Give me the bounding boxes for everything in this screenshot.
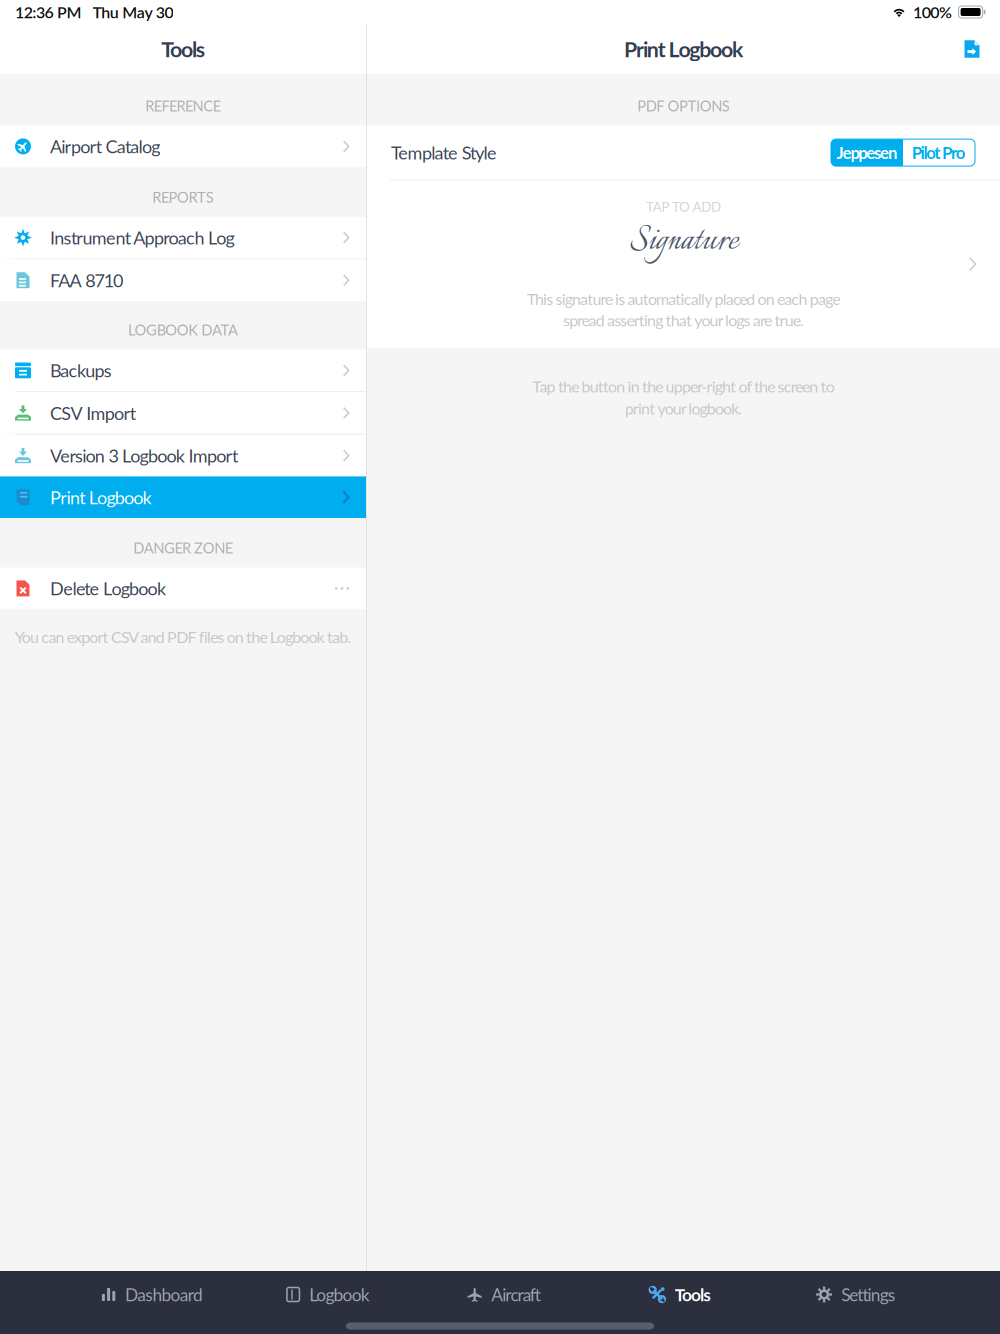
button[interactable]: CSV Import (0, 392, 366, 434)
staticText: Version 3 Logbook Import (50, 445, 238, 466)
button[interactable]: Print Logbook (0, 476, 366, 518)
button[interactable]: Template Style (367, 126, 1000, 180)
staticText: FAA 8710 (50, 269, 123, 291)
staticText: This signature is automatically placed o… (527, 289, 840, 308)
button[interactable]: Instrument Approach Log (0, 217, 366, 258)
button[interactable]: FAA 8710 (0, 259, 366, 301)
staticText: DANGER ZONE (133, 539, 233, 557)
staticText: Settings (841, 1284, 896, 1305)
staticText: print your logbook. (625, 399, 742, 418)
staticText: PDF OPTIONS (637, 97, 730, 115)
staticText: Template Style (391, 142, 497, 163)
staticText: Pilot Pro (912, 143, 966, 163)
staticText: REPORTS (152, 188, 214, 206)
staticText: Backups (50, 360, 112, 381)
staticText: LOGBOOK DATA (128, 321, 238, 339)
staticText: Signature (629, 216, 738, 267)
button[interactable]: Logbook (240, 1271, 416, 1318)
staticText: Jeppesen (837, 143, 897, 163)
staticText: TAP TO ADD (646, 199, 721, 215)
staticText: You can export CSV and PDF files on the … (15, 627, 351, 646)
staticText: Tools (161, 36, 205, 62)
staticText: Dashboard (125, 1284, 203, 1305)
button[interactable]: Jeppesen (831, 139, 903, 166)
button[interactable]: Aircraft (416, 1271, 592, 1318)
staticText: Tap the button in the upper-right of the… (532, 377, 835, 396)
button[interactable]: TAP TO ADD (367, 181, 1000, 348)
button[interactable]: Version 3 Logbook Import (0, 435, 366, 476)
staticText: spread asserting that your logs are true… (563, 310, 804, 330)
button[interactable]: Print (957, 34, 987, 64)
staticText: Tools (675, 1284, 711, 1305)
button[interactable]: Pilot Pro (903, 139, 975, 166)
staticText: Thu May 30 (93, 2, 173, 22)
staticText: REFERENCE (145, 97, 221, 115)
staticText: Delete Logbook (50, 578, 166, 599)
button[interactable]: Airport Catalog (0, 126, 366, 167)
button[interactable]: Dashboard (64, 1271, 240, 1318)
button[interactable]: Tools (592, 1271, 768, 1318)
staticText: Instrument Approach Log (50, 227, 235, 248)
staticText: Print Logbook (50, 486, 152, 508)
staticText: Logbook (309, 1284, 370, 1305)
staticText: 100% (913, 2, 952, 22)
staticText: Print Logbook (624, 36, 743, 62)
button[interactable]: Settings (768, 1271, 944, 1318)
staticText: Aircraft (491, 1284, 541, 1305)
staticText: CSV Import (50, 402, 136, 424)
button[interactable]: Backups (0, 350, 366, 391)
staticText: Airport Catalog (50, 136, 160, 157)
staticText: 12:36 PM (15, 2, 82, 22)
button[interactable]: Delete Logbook (0, 568, 366, 609)
